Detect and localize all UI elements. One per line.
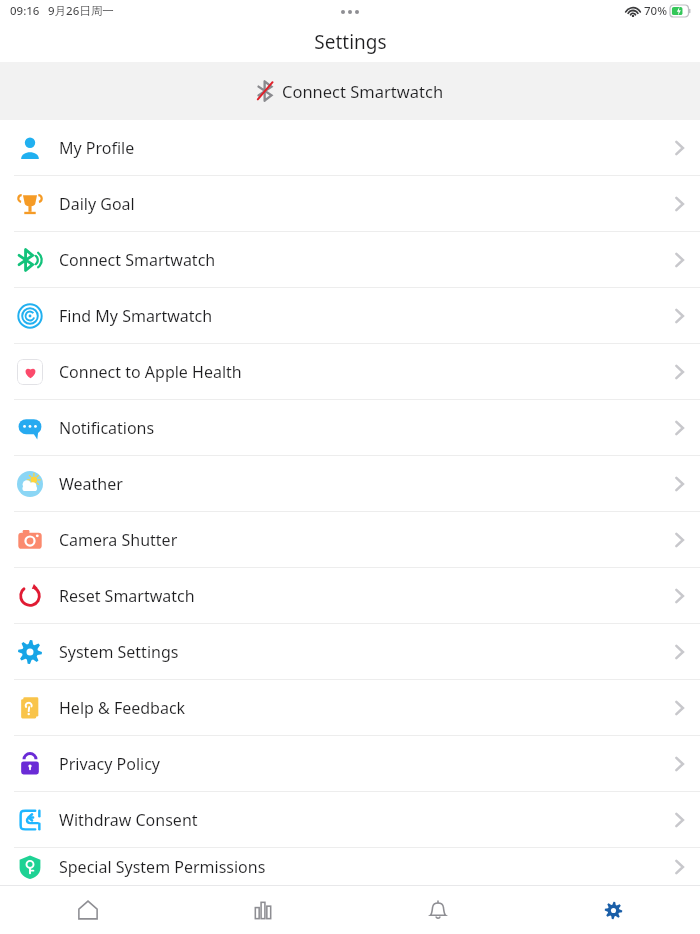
button[interactable]: Statistics — [175, 886, 350, 934]
button[interactable]: Daily Goal — [0, 176, 700, 231]
button[interactable]: Home — [0, 886, 175, 934]
button[interactable]: Camera Shutter — [0, 512, 700, 567]
staticText: Daily Goal — [59, 193, 675, 215]
button[interactable]: My Profile — [0, 120, 700, 175]
staticText: My Profile — [59, 137, 675, 159]
staticText: Connect Smartwatch — [282, 80, 444, 102]
staticText: 9月26日周一 — [48, 3, 114, 19]
staticText: System Settings — [59, 641, 675, 663]
button[interactable]: Notifications — [0, 400, 700, 455]
button[interactable]: Connect Smartwatch — [0, 62, 700, 120]
staticText: Special System Permissions — [59, 856, 675, 878]
staticText: Find My Smartwatch — [59, 305, 675, 327]
button[interactable]: Notifications — [350, 886, 525, 934]
staticText: Camera Shutter — [59, 529, 675, 551]
button[interactable]: Withdraw Consent — [0, 792, 700, 847]
staticText: 70% — [644, 3, 667, 19]
button[interactable]: Find My Smartwatch — [0, 288, 700, 343]
staticText: Notifications — [59, 417, 675, 439]
staticText: Privacy Policy — [59, 753, 675, 775]
staticText: Withdraw Consent — [59, 809, 675, 831]
button[interactable]: Settings — [525, 886, 700, 934]
button[interactable]: Privacy Policy — [0, 736, 700, 791]
button[interactable]: Help & Feedback — [0, 680, 700, 735]
button[interactable]: Weather — [0, 456, 700, 511]
staticText: Reset Smartwatch — [59, 585, 675, 607]
button[interactable]: Connect Smartwatch — [0, 232, 700, 287]
staticText: Connect to Apple Health — [59, 361, 675, 383]
staticText: Connect Smartwatch — [59, 249, 675, 271]
staticText: 09:16 — [10, 3, 40, 19]
button[interactable]: Reset Smartwatch — [0, 568, 700, 623]
staticText: Help & Feedback — [59, 697, 675, 719]
button[interactable]: Connect to Apple Health — [0, 344, 700, 399]
staticText: Weather — [59, 473, 675, 495]
button[interactable]: System Settings — [0, 624, 700, 679]
staticText: Settings — [314, 29, 387, 55]
button[interactable]: Special System Permissions — [0, 848, 700, 885]
